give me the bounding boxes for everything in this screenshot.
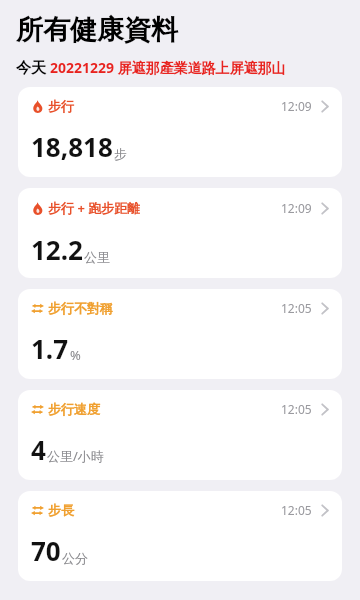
button[interactable]: 步行速度 <box>18 390 342 480</box>
button[interactable]: 步行 + 跑步距離 <box>18 188 342 278</box>
staticText: 12:09 <box>281 98 312 114</box>
button[interactable]: 步行 <box>18 87 342 177</box>
staticText: 步行不對稱 <box>48 300 113 316</box>
staticText: 12:05 <box>281 401 312 417</box>
staticText: 1.7 <box>31 331 69 366</box>
staticText: 公里/小時 <box>47 447 104 465</box>
staticText: 步行速度 <box>48 401 100 417</box>
staticText: 公里 <box>84 249 110 265</box>
staticText: 步行 <box>48 98 74 114</box>
staticText: 公分 <box>62 550 88 566</box>
staticText: % <box>70 346 81 364</box>
staticText: 12.2 <box>31 232 83 267</box>
staticText: 12:05 <box>281 502 312 518</box>
button[interactable]: 步長 <box>18 491 342 581</box>
staticText: 70 <box>31 533 61 568</box>
staticText: 步 <box>114 146 127 162</box>
staticText: 12:09 <box>281 200 312 216</box>
staticText: 18,818 <box>31 129 113 164</box>
staticText: 今天 20221229 屏遮那產業道路上屏遮那山 <box>16 57 286 77</box>
staticText: 12:05 <box>281 300 312 316</box>
staticText: 步長 <box>48 502 74 518</box>
staticText: 4 <box>31 432 46 467</box>
button[interactable]: 步行不對稱 <box>18 289 342 379</box>
staticText: 所有健康資料 <box>16 13 178 47</box>
staticText: 步行 + 跑步距離 <box>48 199 141 217</box>
